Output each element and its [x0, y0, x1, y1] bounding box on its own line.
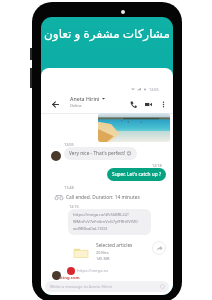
staticText: 12:18: [152, 163, 162, 168]
staticText: Online: [70, 103, 82, 108]
staticText: Super. Let's catch up ?: [112, 171, 162, 178]
button[interactable]: Back: [49, 98, 61, 110]
staticText: Aneta Hirini: [70, 95, 100, 102]
button[interactable]: Super. Let's catch up ?: [107, 168, 166, 181]
staticText: 20 files: [96, 250, 109, 255]
staticText: 12:05: [149, 87, 159, 92]
button[interactable]: https://mega.nz/#!r5kBRLLU! WMnFvV7eFn6m…: [68, 209, 151, 235]
staticText: Very nice - That's perfect! 😊: [69, 150, 132, 157]
staticText: 12:15: [69, 204, 79, 209]
button[interactable]: Selected articles: [73, 241, 166, 265]
staticText: 11:48: [64, 185, 74, 190]
staticText: 145 MB: [96, 256, 110, 261]
staticText: مشاركات مشفرة و تعاون: [41, 25, 173, 41]
button[interactable]: Write a message to Aneta Hirini: [45, 281, 169, 292]
button[interactable]: Video call: [143, 99, 153, 109]
staticText: https://mega.nz/#!r5kBRLLU! WMnFvV7eFn6m…: [73, 212, 138, 231]
staticText: sting.com: [59, 275, 80, 281]
button[interactable]: Very nice - That's perfect! 😊: [64, 147, 137, 160]
staticText: Write a message to Aneta Hirini: [50, 284, 113, 290]
other: Attach: [160, 284, 165, 289]
button[interactable]: Share: [152, 241, 166, 255]
staticText: https://mega.nz: [77, 268, 109, 274]
staticText: Selected articles: [96, 242, 133, 249]
button[interactable]: Call: [128, 99, 138, 109]
button[interactable]: More options: [158, 99, 168, 109]
staticText: 12:05: [64, 142, 74, 147]
staticText: Call ended. Duration: 14 minutes: [66, 194, 140, 201]
